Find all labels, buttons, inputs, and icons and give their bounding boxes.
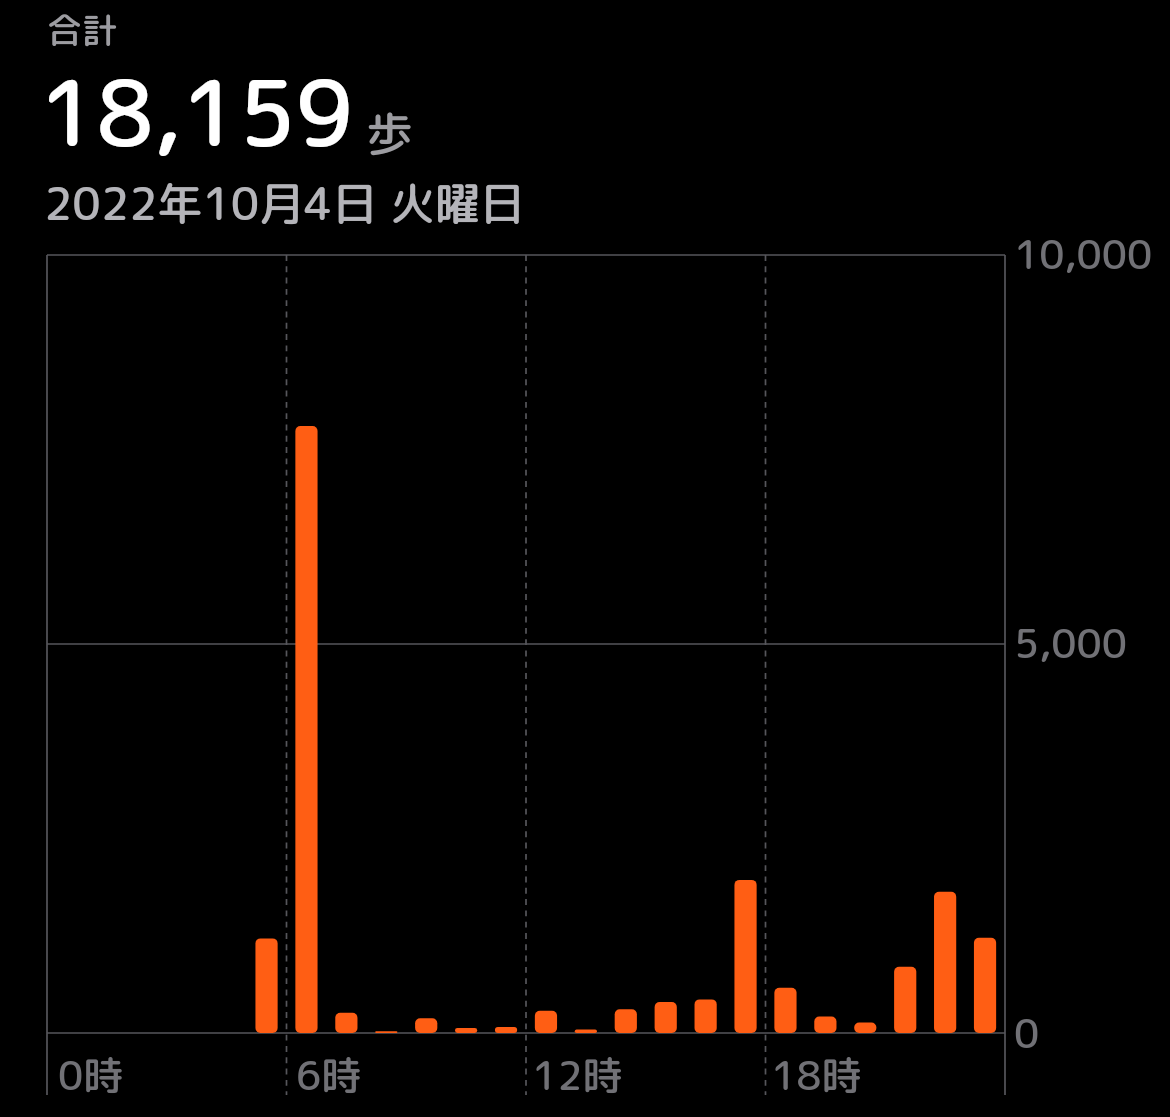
button[interactable]: Hourly step chart, tap a bar for details: [47, 255, 1005, 1033]
button[interactable]: 合計: [39, 0, 539, 235]
staticText: 0: [1014, 1005, 1040, 1061]
staticText: 2022年10月4日 火曜日: [44, 172, 525, 235]
staticText: 0時: [58, 1047, 124, 1103]
staticText: 6時: [296, 1047, 362, 1103]
staticText: 5,000: [1014, 615, 1127, 671]
staticText: 12時: [532, 1047, 623, 1103]
staticText: 18,159: [39, 48, 354, 175]
staticText: 歩: [366, 100, 413, 166]
staticText: 合計: [47, 5, 118, 54]
staticText: 18時: [771, 1047, 862, 1103]
staticText: 10,000: [1014, 226, 1153, 282]
